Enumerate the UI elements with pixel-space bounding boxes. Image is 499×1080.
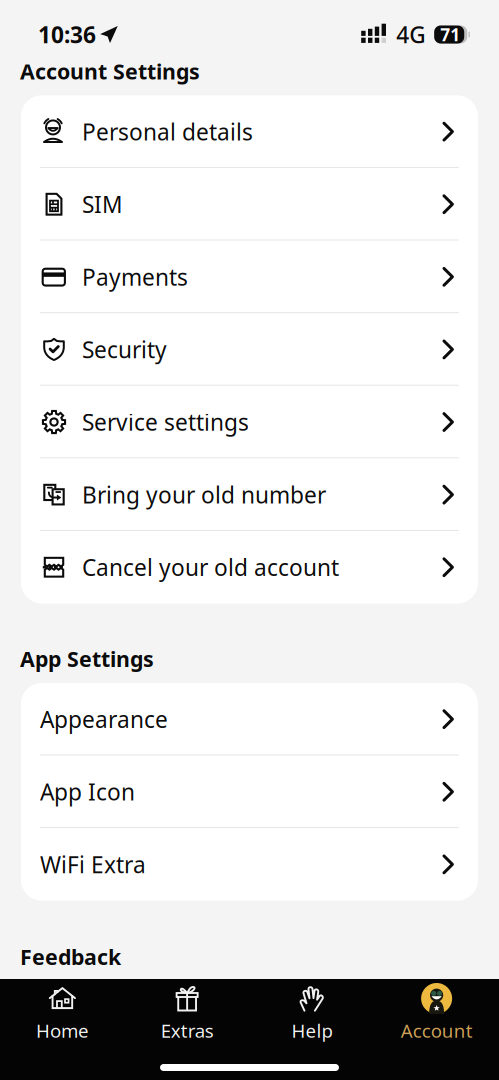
button[interactable]: App Icon <box>21 755 478 828</box>
staticText: Cancel your old account <box>82 552 339 582</box>
button[interactable]: Personal details <box>21 95 478 168</box>
button[interactable]: Cancel your old account <box>21 531 478 603</box>
staticText: Appearance <box>40 704 168 734</box>
staticText: Help <box>291 1018 332 1043</box>
staticText: WiFi Extra <box>40 849 146 879</box>
staticText: Service settings <box>82 407 249 437</box>
staticText: Account Settings <box>20 57 200 85</box>
staticText: App Settings <box>20 644 154 673</box>
staticText: Security <box>82 334 167 364</box>
button[interactable]: Home <box>0 985 125 1061</box>
button[interactable]: Extras <box>125 985 250 1061</box>
staticText: SIM <box>82 189 123 219</box>
button[interactable]: Service settings <box>21 386 478 458</box>
button[interactable]: Payments <box>21 240 478 313</box>
button[interactable]: Account <box>374 985 499 1061</box>
button[interactable]: Help <box>249 985 374 1061</box>
button[interactable]: SIM <box>21 168 478 240</box>
button[interactable]: Security <box>21 313 478 386</box>
staticText: Extras <box>161 1018 214 1043</box>
staticText: Personal details <box>82 117 253 147</box>
staticText: App Icon <box>40 777 135 807</box>
staticText: Home <box>36 1018 89 1043</box>
staticText: 71 <box>440 23 460 46</box>
staticText: Bring your old number <box>82 480 326 510</box>
button[interactable]: WiFi Extra <box>21 828 478 901</box>
staticText: Payments <box>82 262 188 292</box>
button[interactable]: Appearance <box>21 683 478 755</box>
button[interactable]: Bring your old number <box>21 458 478 531</box>
staticText: 10:36 <box>38 19 96 49</box>
staticText: 4G <box>396 19 425 49</box>
staticText: Account <box>401 1018 473 1043</box>
staticText: Feedback <box>20 943 121 971</box>
